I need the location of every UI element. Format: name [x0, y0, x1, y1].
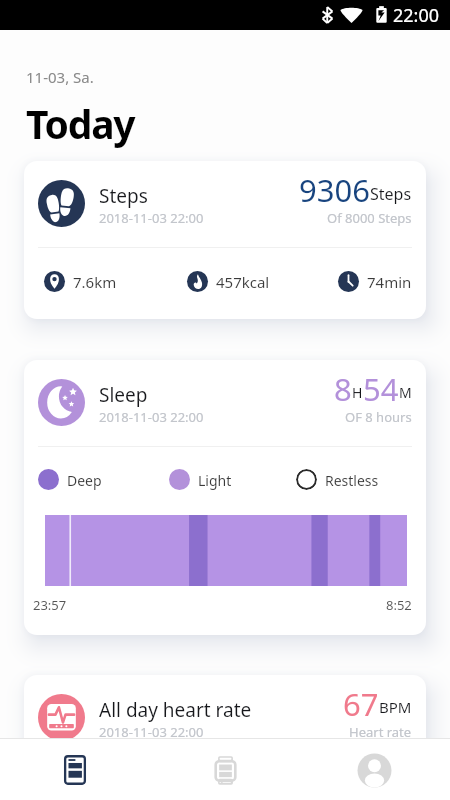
- staticText: Light: [198, 471, 232, 490]
- staticText: 11-03, Sa.: [26, 67, 94, 87]
- staticText: 9306: [299, 169, 370, 211]
- staticText: 54: [363, 368, 399, 410]
- staticText: Today: [26, 97, 135, 150]
- staticText: 23:57: [33, 596, 67, 614]
- staticText: 22:00: [393, 3, 440, 28]
- button[interactable]: Steps: [24, 161, 426, 319]
- staticText: 8: [334, 368, 352, 410]
- staticText: All day heart rate: [99, 697, 252, 723]
- button[interactable]: Watch: [170, 738, 280, 800]
- staticText: 67: [343, 683, 379, 725]
- staticText: Steps: [370, 183, 412, 205]
- staticText: Heart rate: [349, 723, 412, 741]
- button[interactable]: All day heart rate: [24, 675, 426, 775]
- staticText: OF 8 hours: [345, 408, 412, 426]
- staticText: Sleep: [99, 382, 148, 408]
- staticText: Deep: [67, 471, 102, 490]
- staticText: M: [399, 383, 412, 402]
- button[interactable]: Dashboard: [20, 738, 130, 800]
- button[interactable]: Sleep: [24, 360, 426, 635]
- staticText: 7.6km: [73, 272, 117, 292]
- staticText: BPM: [379, 697, 412, 717]
- staticText: 2018-11-03 22:00: [99, 209, 204, 227]
- staticText: Restless: [325, 471, 379, 490]
- staticText: 74min: [367, 272, 412, 292]
- staticText: Of 8000 Steps: [327, 209, 412, 227]
- staticText: 2018-11-03 22:00: [99, 723, 204, 741]
- staticText: 8:52: [386, 596, 412, 614]
- staticText: 2018-11-03 22:00: [99, 408, 204, 426]
- button[interactable]: Profile: [319, 738, 429, 800]
- staticText: Steps: [99, 183, 148, 209]
- staticText: 457kcal: [216, 272, 270, 292]
- staticText: H: [352, 383, 363, 402]
